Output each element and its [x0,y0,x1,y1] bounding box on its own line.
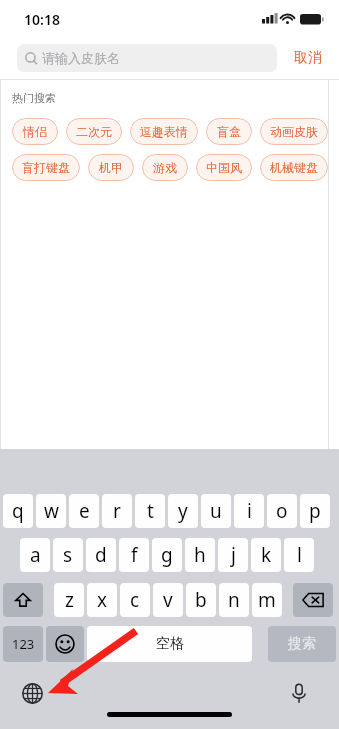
staticText: w [44,498,59,524]
staticText: r [113,498,121,524]
staticText: g [161,542,173,568]
staticText: p [309,498,321,524]
button[interactable]: y [168,494,198,528]
staticText: m [258,587,276,613]
button[interactable]: 取消 [277,44,339,72]
staticText: b [195,587,207,613]
button[interactable]: k [251,538,281,572]
staticText: s [63,542,73,568]
staticText: a [30,542,41,568]
button[interactable]: Voice input [283,677,315,709]
button[interactable]: p [300,494,330,528]
staticText: v [163,587,173,613]
staticText: u [210,498,222,524]
button[interactable]: 空格 [87,626,252,662]
button[interactable]: 二次元 [66,118,122,145]
button[interactable]: r [102,494,132,528]
button[interactable]: 中国风 [196,154,252,181]
button[interactable]: 盲打键盘 [12,154,80,181]
staticText: 动画皮肤 [270,124,318,139]
button[interactable]: Backspace [293,583,333,617]
staticText: 机械键盘 [270,160,318,175]
button[interactable]: t [135,494,165,528]
button[interactable]: q [3,494,33,528]
button[interactable]: 123 [3,626,43,662]
button[interactable]: s [53,538,83,572]
staticText: y [178,498,188,524]
staticText: 123 [12,635,35,653]
button[interactable]: c [120,583,150,617]
staticText: 二次元 [76,124,112,139]
staticText: n [228,587,240,613]
button[interactable]: 游戏 [142,154,188,181]
staticText: e [79,498,90,524]
staticText: o [276,498,288,524]
button[interactable]: e [69,494,99,528]
button[interactable]: m [252,583,282,617]
button[interactable]: o [267,494,297,528]
staticText: i [247,498,252,524]
button[interactable]: j [218,538,248,572]
staticText: 盲盒 [217,124,241,139]
button[interactable]: 情侣 [12,118,58,145]
button[interactable]: Emoji [46,626,84,662]
button[interactable]: w [36,494,66,528]
button[interactable]: v [153,583,183,617]
staticText: 情侣 [23,124,47,139]
staticText: k [261,542,272,568]
button[interactable]: b [186,583,216,617]
staticText: 搜索 [288,635,316,653]
button[interactable]: Shift [3,583,43,617]
button[interactable]: Change keyboard language [16,677,48,709]
staticText: 热门搜索 [12,91,56,105]
button[interactable]: 机械键盘 [260,154,328,181]
staticText: q [12,498,24,524]
staticText: 取消 [294,49,322,67]
button[interactable]: d [86,538,116,572]
staticText: 逗趣表情 [140,124,188,139]
button[interactable]: 搜索 [268,626,336,662]
staticText: 盲打键盘 [22,160,70,175]
button[interactable]: a [20,538,50,572]
button[interactable]: u [201,494,231,528]
button[interactable]: i [234,494,264,528]
button[interactable]: x [87,583,117,617]
button[interactable]: f [119,538,149,572]
button[interactable]: l [284,538,314,572]
staticText: 机甲 [99,160,123,175]
staticText: l [297,542,302,568]
staticText: 请输入皮肤名 [42,50,120,66]
button[interactable]: 盲盒 [206,118,252,145]
staticText: c [130,587,140,613]
button[interactable]: z [54,583,84,617]
staticText: 游戏 [153,160,177,175]
staticText: 空格 [156,635,184,653]
button[interactable]: h [185,538,215,572]
button[interactable]: 请输入皮肤名 [17,44,277,72]
button[interactable]: g [152,538,182,572]
staticText: j [231,542,236,568]
staticText: x [97,587,108,613]
staticText: z [65,587,74,613]
button[interactable]: 逗趣表情 [130,118,198,145]
button[interactable]: 机甲 [88,154,134,181]
staticText: t [147,498,154,524]
button[interactable]: 动画皮肤 [260,118,328,145]
staticText: h [194,542,206,568]
staticText: f [131,542,138,568]
staticText: d [95,542,107,568]
button[interactable]: n [219,583,249,617]
staticText: 中国风 [206,160,242,175]
staticText: 10:18 [24,10,60,29]
